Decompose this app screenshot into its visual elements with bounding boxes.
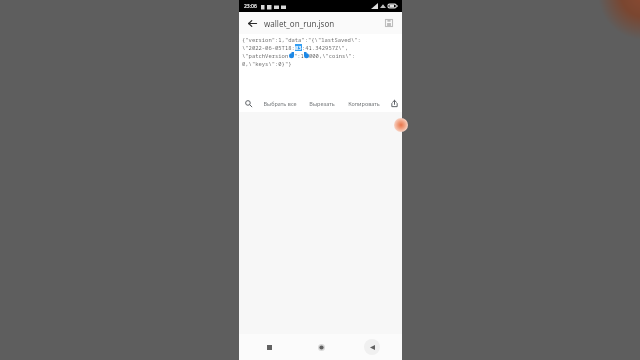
staticText: Выбрать все [263,100,297,107]
button[interactable]: Save [382,16,396,30]
button[interactable]: Копировать [341,94,386,112]
button[interactable]: Home [313,339,329,355]
staticText: Копировать [348,100,380,107]
staticText: :41.342957Z\", [302,44,349,51]
button[interactable]: Search [239,94,257,112]
staticText: \"patchVersion [242,52,289,59]
staticText: 03 [295,44,302,51]
button[interactable]: Share [386,94,402,112]
staticText: wallet_on_run.json [264,18,335,29]
button[interactable]: Back [364,339,380,355]
staticText: \"2022-06-05T18: [242,44,295,51]
staticText: {"version":1,"data":"{\"lastSaved\": [242,36,361,43]
staticText: 23:06 [244,3,257,10]
staticText: 0,\"keys\":0}"} [242,60,292,67]
button[interactable]: Back [245,16,259,30]
button[interactable]: Выбрать все [257,94,303,112]
staticText: Вырезать [309,100,335,107]
staticText: ":1 [294,52,304,59]
button[interactable]: Вырезать [303,94,341,112]
button[interactable]: Recent apps [261,339,277,355]
staticText: 000,\"coins\": [309,52,356,59]
